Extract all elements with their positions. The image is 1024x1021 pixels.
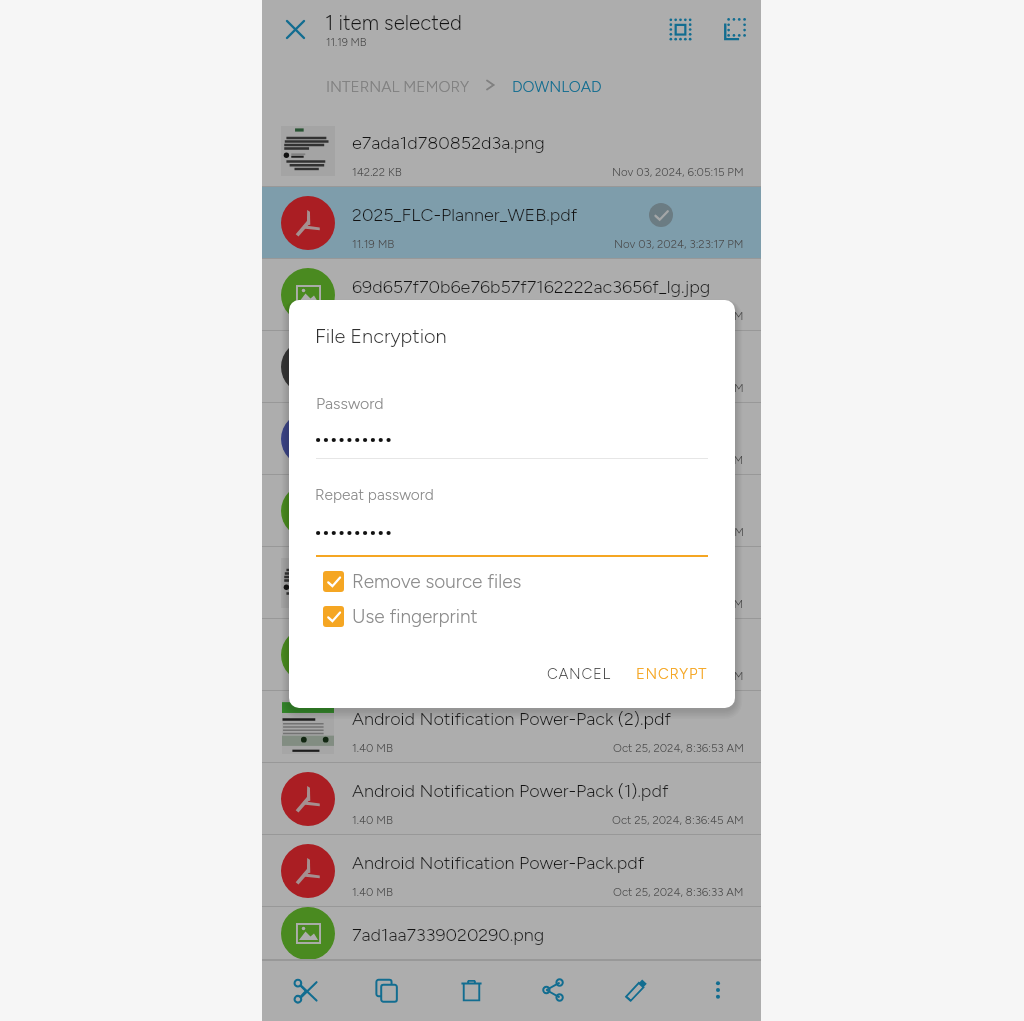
button[interactable]: 2025_FLC-Planner_WEB.pdf bbox=[262, 187, 761, 259]
staticText: invoice_october.pdf bbox=[352, 564, 511, 586]
button[interactable]: Android Notification Power-Pack (2).pdf bbox=[262, 691, 761, 763]
staticText: Nov 03, 2024, 6:05:15 PM bbox=[612, 165, 744, 179]
staticText: 120 KB bbox=[352, 957, 388, 960]
button[interactable]: photo_2024_1031.png bbox=[262, 475, 761, 547]
staticText: 1.40 MB bbox=[352, 885, 393, 899]
staticText: 1.40 MB bbox=[352, 813, 393, 827]
staticText: Android Notification Power-Pack (2).pdf bbox=[352, 708, 671, 730]
staticText: Android Notification Power-Pack (1).pdf bbox=[352, 780, 669, 802]
staticText: photo_2024_1031.png bbox=[352, 492, 529, 514]
staticText: 98.45 KB bbox=[352, 597, 399, 611]
staticText: e7ada1d780852d3a.png bbox=[352, 132, 545, 154]
button[interactable]: CANCEL bbox=[534, 658, 624, 690]
button[interactable]: Select all bbox=[657, 6, 704, 53]
button[interactable]: Android Notification Power-Pack.pdf bbox=[262, 835, 761, 907]
staticText: 1.40 MB bbox=[352, 741, 393, 755]
staticText: Nov 02, 2024, 9:12:44 AM bbox=[611, 381, 744, 395]
staticText: world_map_hires.jpg bbox=[352, 420, 514, 442]
button[interactable]: Rename bbox=[612, 966, 660, 1014]
staticText: Password bbox=[316, 394, 384, 413]
staticText: 1 item selected bbox=[325, 11, 462, 36]
button[interactable]: e7ada1d780852d3a.png bbox=[262, 115, 761, 187]
button[interactable]: Close selection bbox=[272, 6, 319, 53]
button[interactable]: ENCRYPT bbox=[623, 658, 720, 690]
staticText: 1.22 MB bbox=[352, 453, 392, 467]
button[interactable]: Android Notification Power-Pack (1).pdf bbox=[262, 763, 761, 835]
staticText: Oct 28, 2024, 6:22:08 PM bbox=[612, 669, 744, 683]
button[interactable]: INTERNAL MEMORY bbox=[326, 77, 470, 96]
button[interactable]: screenshot_2024_1103.png bbox=[262, 331, 761, 403]
staticText: 69d657f70b6e76b57f7162222ac3656f_lg.jpg bbox=[352, 276, 711, 298]
button[interactable]: 69d657f70b6e76b57f7162222ac3656f_lg.jpg bbox=[262, 259, 761, 331]
staticText: 7ad1aa7339020290.png bbox=[352, 924, 545, 946]
staticText: Oct 23, 2024, 5:01:17 PM bbox=[617, 957, 744, 960]
button[interactable]: Invert selection bbox=[711, 6, 758, 53]
button[interactable]: Copy bbox=[362, 966, 410, 1014]
button[interactable]: Share bbox=[529, 966, 577, 1014]
button[interactable]: Use fingerprint bbox=[323, 601, 478, 631]
staticText: Oct 25, 2024, 8:36:45 AM bbox=[612, 813, 744, 827]
button[interactable]: invoice_october.pdf bbox=[262, 547, 761, 619]
staticText: File Encryption bbox=[315, 324, 447, 348]
button[interactable]: More options bbox=[694, 966, 742, 1014]
staticText: Nov 03, 2024, 3:23:17 PM bbox=[614, 237, 744, 251]
staticText: ENCRYPT bbox=[636, 665, 707, 683]
button[interactable]: 7ad1aa7339020290.png bbox=[262, 907, 761, 960]
staticText: Nov 01, 2024, 4:45:10 PM bbox=[612, 453, 744, 467]
staticText: Oct 25, 2024, 8:36:33 AM bbox=[613, 885, 744, 899]
staticText: 233.10 KB bbox=[352, 525, 402, 539]
staticText: Oct 31, 2024, 7:38:55 PM bbox=[616, 525, 744, 539]
staticText: 11.19 MB bbox=[352, 237, 395, 251]
staticText: Nov 03, 2024, 1:10:02 PM bbox=[613, 309, 744, 323]
staticText: Remove source files bbox=[352, 570, 522, 593]
button[interactable]: Cut bbox=[281, 966, 329, 1014]
staticText: 2025_FLC-Planner_WEB.pdf bbox=[352, 204, 578, 226]
staticText: Oct 25, 2024, 8:36:53 AM bbox=[613, 741, 744, 755]
button[interactable]: vacation_beach.jpg bbox=[262, 619, 761, 691]
staticText: Use fingerprint bbox=[352, 605, 478, 628]
button[interactable]: Delete bbox=[447, 966, 495, 1014]
staticText: Oct 29, 2024, 11:02:31 AM bbox=[611, 597, 744, 611]
staticText: Android Notification Power-Pack.pdf bbox=[352, 852, 645, 874]
staticText: 11.19 MB bbox=[326, 36, 367, 49]
button[interactable]: world_map_hires.jpg bbox=[262, 403, 761, 475]
staticText: 142.22 KB bbox=[352, 165, 402, 179]
staticText: Repeat password bbox=[315, 485, 434, 504]
button[interactable]: DOWNLOAD bbox=[512, 77, 602, 96]
staticText: CANCEL bbox=[547, 665, 611, 683]
button[interactable]: Remove source files bbox=[323, 566, 522, 596]
